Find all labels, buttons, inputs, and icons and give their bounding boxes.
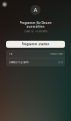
- staticText: auswählen: [26, 25, 44, 28]
- staticText: A: [33, 7, 37, 13]
- button[interactable]: Programm starten: [6, 41, 65, 48]
- staticText: Programm starten: [21, 43, 49, 46]
- staticText: Dunkelprogramm: [8, 61, 28, 64]
- button[interactable]: Dunkelprogramm: [6, 58, 65, 66]
- button[interactable]: Tür: [6, 50, 65, 58]
- staticText: Tür: [8, 52, 12, 55]
- staticText: Ein: [58, 61, 62, 64]
- staticText: Programm für Dosen: [19, 21, 51, 25]
- staticText: Dauer ca. 48 Minuten: [24, 30, 47, 33]
- staticText: Geschlossen: [49, 52, 62, 55]
